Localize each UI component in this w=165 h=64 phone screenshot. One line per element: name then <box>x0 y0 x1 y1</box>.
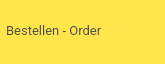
staticText: Bestellen - Order <box>6 23 102 38</box>
button[interactable]: Bestellen - Order <box>0 0 165 64</box>
